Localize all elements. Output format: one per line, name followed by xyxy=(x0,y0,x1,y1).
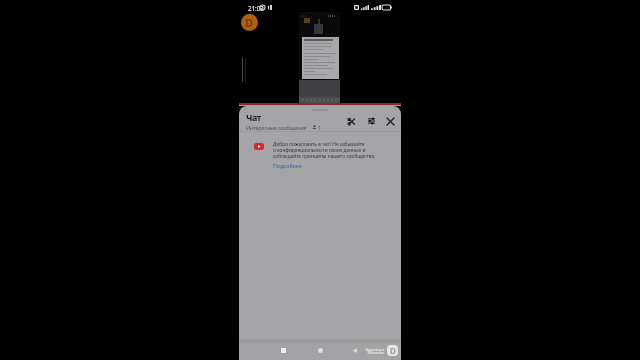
staticText: 21:03 xyxy=(248,4,264,12)
button[interactable]: Screen recorder xyxy=(241,14,258,31)
button[interactable]: Подробнее xyxy=(273,162,302,169)
staticText: Добро пожаловать в чат! Не забывайте о к… xyxy=(273,141,376,159)
button[interactable]: Home xyxy=(313,343,327,357)
staticText: 1 xyxy=(318,124,322,131)
button[interactable]: Back xyxy=(348,343,362,357)
button[interactable]: Emoji xyxy=(343,113,359,129)
staticText: Записано в XRecorder xyxy=(365,347,384,355)
staticText: D xyxy=(245,15,254,30)
button[interactable]: Close chat xyxy=(382,113,398,129)
button[interactable]: Chat settings xyxy=(363,113,379,129)
button[interactable]: Добро пожаловать в чат! Не забывайте о к… xyxy=(239,136,401,176)
button[interactable]: Recents xyxy=(276,343,290,357)
staticText: Интересные сообщения xyxy=(246,124,307,131)
button[interactable]: Чат xyxy=(246,111,261,123)
staticText: D xyxy=(390,345,396,356)
